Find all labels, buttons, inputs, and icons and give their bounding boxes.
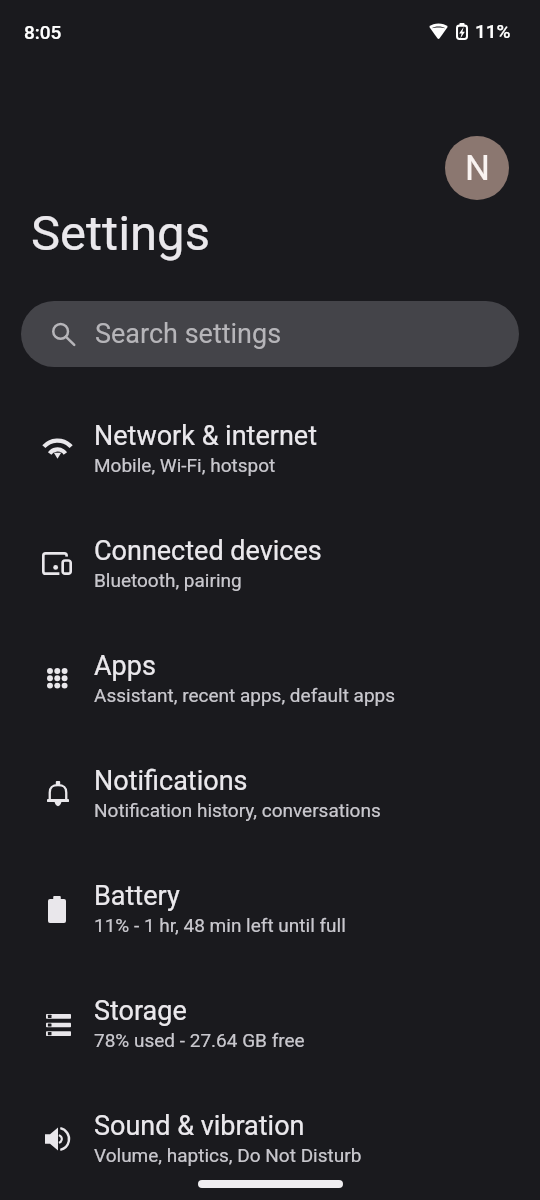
staticText: Apps — [94, 650, 156, 682]
button[interactable]: Network & internet — [0, 391, 540, 506]
staticText: Settings — [31, 205, 210, 262]
button[interactable]: Connected devices — [0, 506, 540, 621]
staticText: Battery — [94, 880, 180, 912]
button[interactable]: Notifications — [0, 736, 540, 851]
staticText: Search settings — [95, 318, 282, 350]
staticText: 8:05 — [24, 21, 62, 43]
staticText: Network & internet — [94, 420, 317, 452]
staticText: Bluetooth, pairing — [94, 569, 242, 591]
staticText: 11% — [475, 20, 511, 42]
staticText: 11% - 1 hr, 48 min left until full — [94, 914, 346, 936]
staticText: Assistant, recent apps, default apps — [94, 684, 396, 706]
button[interactable]: Storage — [0, 966, 540, 1081]
staticText: Notifications — [94, 765, 248, 797]
staticText: Volume, haptics, Do Not Disturb — [94, 1144, 362, 1166]
staticText: Notification history, conversations — [94, 799, 381, 821]
staticText: Storage — [94, 995, 187, 1027]
staticText: Sound & vibration — [94, 1110, 305, 1142]
button[interactable]: Apps — [0, 621, 540, 736]
staticText: N — [465, 148, 490, 189]
button[interactable]: Search settings — [21, 301, 519, 367]
staticText: Mobile, Wi-Fi, hotspot — [94, 454, 276, 476]
button[interactable]: Sound & vibration — [0, 1081, 540, 1196]
staticText: 78% used - 27.64 GB free — [94, 1029, 305, 1051]
button[interactable]: Account — [445, 136, 509, 200]
staticText: Connected devices — [94, 535, 322, 567]
button[interactable]: Battery — [0, 851, 540, 966]
